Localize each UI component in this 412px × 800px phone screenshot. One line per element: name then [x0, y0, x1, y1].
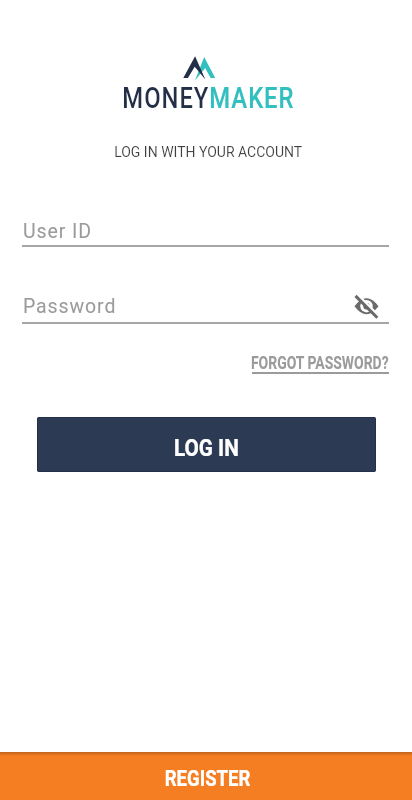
button[interactable]: Password [22, 292, 390, 320]
button[interactable]: User ID [22, 218, 390, 244]
staticText: LOG IN [174, 433, 239, 462]
button[interactable]: LOG IN [37, 417, 376, 472]
button[interactable]: FORGOT PASSWORD? [231, 352, 409, 373]
staticText: Password [23, 295, 117, 318]
button[interactable] [354, 294, 380, 319]
staticText: LOG IN WITH YOUR ACCOUNT [114, 143, 303, 161]
staticText: FORGOT PASSWORD? [251, 352, 389, 373]
staticText: REGISTER [165, 766, 251, 791]
staticText: MONEYMAKER [122, 80, 295, 115]
staticText: User ID [23, 220, 92, 243]
button[interactable]: REGISTER [0, 752, 412, 800]
